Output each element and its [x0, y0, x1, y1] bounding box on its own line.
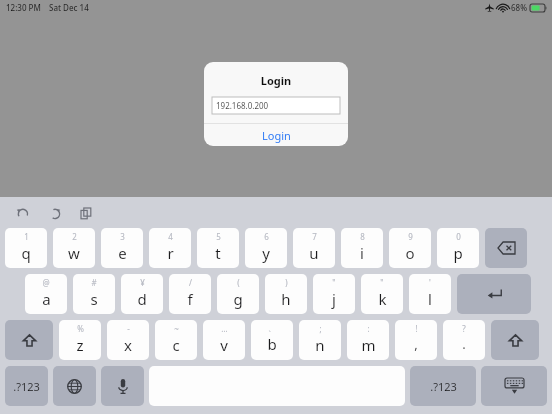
- staticText: -: [127, 323, 130, 334]
- staticText: ?: [462, 323, 466, 334]
- staticText: z: [76, 335, 84, 355]
- button[interactable]: Redo: [42, 201, 66, 225]
- staticText: /: [189, 277, 192, 288]
- staticText: 8: [360, 231, 365, 242]
- button[interactable]: Login: [204, 124, 348, 146]
- button[interactable]: Hide keyboard: [481, 366, 547, 406]
- staticText: e: [118, 243, 127, 263]
- staticText: ¥: [140, 277, 145, 288]
- staticText: a: [42, 289, 51, 309]
- button[interactable]: %: [59, 320, 101, 360]
- staticText: q: [21, 243, 31, 263]
- staticText: 3: [120, 231, 125, 242]
- staticText: Login: [262, 128, 291, 143]
- staticText: v: [220, 335, 228, 355]
- button[interactable]: .?123: [5, 366, 48, 406]
- staticText: 2: [72, 231, 77, 242]
- button[interactable]: ': [409, 274, 451, 314]
- staticText: o: [405, 243, 415, 263]
- staticText: ~: [174, 323, 179, 334]
- button[interactable]: 4: [149, 228, 191, 268]
- button[interactable]: -: [107, 320, 149, 360]
- button[interactable]: 8: [341, 228, 383, 268]
- button[interactable]: ¥: [121, 274, 163, 314]
- staticText: %: [77, 323, 84, 334]
- staticText: 4: [168, 231, 173, 242]
- button[interactable]: ": [313, 274, 355, 314]
- staticText: Login: [204, 73, 348, 88]
- staticText: 1: [24, 231, 29, 242]
- staticText: ;: [319, 323, 322, 334]
- staticText: r: [167, 243, 174, 263]
- staticText: y: [262, 243, 270, 263]
- button[interactable]: .?123: [410, 366, 476, 406]
- staticText: n: [315, 335, 325, 355]
- button[interactable]: 9: [389, 228, 431, 268]
- button[interactable]: Paste: [74, 201, 98, 225]
- button[interactable]: Change keyboard: [53, 366, 96, 406]
- staticText: b: [267, 334, 277, 354]
- button[interactable]: ~: [155, 320, 197, 360]
- staticText: 5: [216, 231, 221, 242]
- button[interactable]: :: [347, 320, 389, 360]
- staticText: (: [237, 277, 240, 288]
- staticText: Sat Dec 14: [49, 2, 89, 13]
- button[interactable]: 、: [251, 320, 293, 360]
- staticText: 68%: [511, 2, 527, 13]
- staticText: f: [187, 289, 193, 309]
- staticText: m: [361, 335, 376, 355]
- staticText: …: [221, 323, 228, 334]
- staticText: ): [285, 277, 288, 288]
- staticText: l: [428, 289, 432, 309]
- staticText: !: [415, 323, 418, 334]
- button[interactable]: 192.168.0.200: [212, 97, 340, 114]
- staticText: .?123: [13, 379, 40, 394]
- button[interactable]: 1: [5, 228, 47, 268]
- staticText: .?123: [430, 379, 457, 394]
- staticText: i: [360, 243, 364, 263]
- staticText: j: [332, 289, 336, 309]
- button[interactable]: Backspace: [485, 228, 527, 268]
- button[interactable]: Shift: [491, 320, 539, 360]
- staticText: 9: [408, 231, 413, 242]
- button[interactable]: #: [73, 274, 115, 314]
- button[interactable]: 6: [245, 228, 287, 268]
- staticText: @: [42, 277, 50, 288]
- staticText: x: [124, 335, 132, 355]
- staticText: 6: [264, 231, 269, 242]
- button[interactable]: Shift: [5, 320, 53, 360]
- staticText: w: [68, 243, 80, 263]
- staticText: u: [309, 243, 319, 263]
- button[interactable]: /: [169, 274, 211, 314]
- button[interactable]: Dictation: [101, 366, 144, 406]
- staticText: t: [215, 243, 221, 263]
- staticText: 7: [312, 231, 317, 242]
- button[interactable]: ;: [299, 320, 341, 360]
- staticText: d: [137, 289, 147, 309]
- button[interactable]: ?: [443, 320, 485, 360]
- button[interactable]: Undo: [10, 201, 34, 225]
- staticText: c: [172, 335, 180, 355]
- staticText: h: [281, 289, 291, 309]
- staticText: g: [233, 289, 243, 309]
- button[interactable]: 5: [197, 228, 239, 268]
- staticText: s: [90, 289, 98, 309]
- staticText: ": [332, 277, 336, 288]
- button[interactable]: 2: [53, 228, 95, 268]
- button[interactable]: …: [203, 320, 245, 360]
- button[interactable]: ": [361, 274, 403, 314]
- button[interactable]: 7: [293, 228, 335, 268]
- staticText: p: [453, 243, 463, 263]
- button[interactable]: @: [25, 274, 67, 314]
- staticText: ,: [414, 335, 418, 353]
- staticText: #: [91, 277, 97, 288]
- button[interactable]: ): [265, 274, 307, 314]
- button[interactable]: Return: [457, 274, 531, 314]
- button[interactable]: !: [395, 320, 437, 360]
- staticText: ': [429, 277, 431, 288]
- button[interactable]: (: [217, 274, 259, 314]
- button[interactable]: 0: [437, 228, 479, 268]
- button[interactable]: 3: [101, 228, 143, 268]
- staticText: ": [380, 277, 384, 288]
